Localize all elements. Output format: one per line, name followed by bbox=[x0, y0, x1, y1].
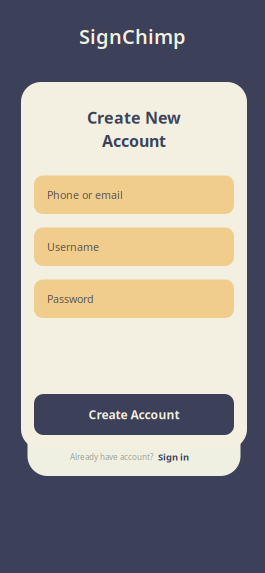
button[interactable]: Already have account? bbox=[27, 445, 240, 469]
staticText: Username bbox=[47, 240, 99, 254]
staticText: Account bbox=[102, 130, 166, 151]
staticText: Already have account? bbox=[70, 452, 153, 462]
button[interactable]: Username bbox=[34, 227, 234, 266]
staticText: Password bbox=[47, 292, 94, 306]
button[interactable]: Phone or email bbox=[34, 175, 234, 214]
staticText: SignChimp bbox=[79, 23, 186, 50]
staticText: Create Account bbox=[88, 406, 179, 422]
staticText: Create New bbox=[87, 107, 181, 128]
button[interactable]: Password bbox=[34, 279, 234, 318]
staticText: Phone or email bbox=[47, 188, 123, 202]
staticText: Sign in bbox=[158, 451, 189, 463]
button[interactable]: Create Account bbox=[34, 394, 234, 435]
